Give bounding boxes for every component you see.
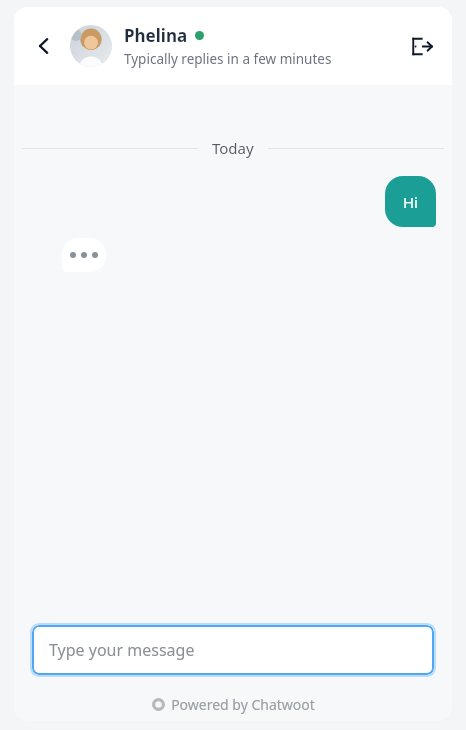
- button[interactable]: Hi: [385, 176, 436, 227]
- staticText: Phelina: [124, 24, 188, 47]
- staticText: Today: [212, 138, 254, 158]
- staticText: Powered by Chatwoot: [171, 695, 315, 714]
- staticText: Hi: [403, 192, 418, 212]
- staticText: Typically replies in a few minutes: [124, 50, 332, 68]
- staticText: Type your message: [49, 639, 195, 661]
- button[interactable]: End conversation: [402, 26, 442, 66]
- button[interactable]: Back: [24, 26, 64, 66]
- button[interactable]: Powered by Chatwoot: [152, 695, 315, 714]
- button[interactable]: Type your message: [32, 625, 434, 675]
